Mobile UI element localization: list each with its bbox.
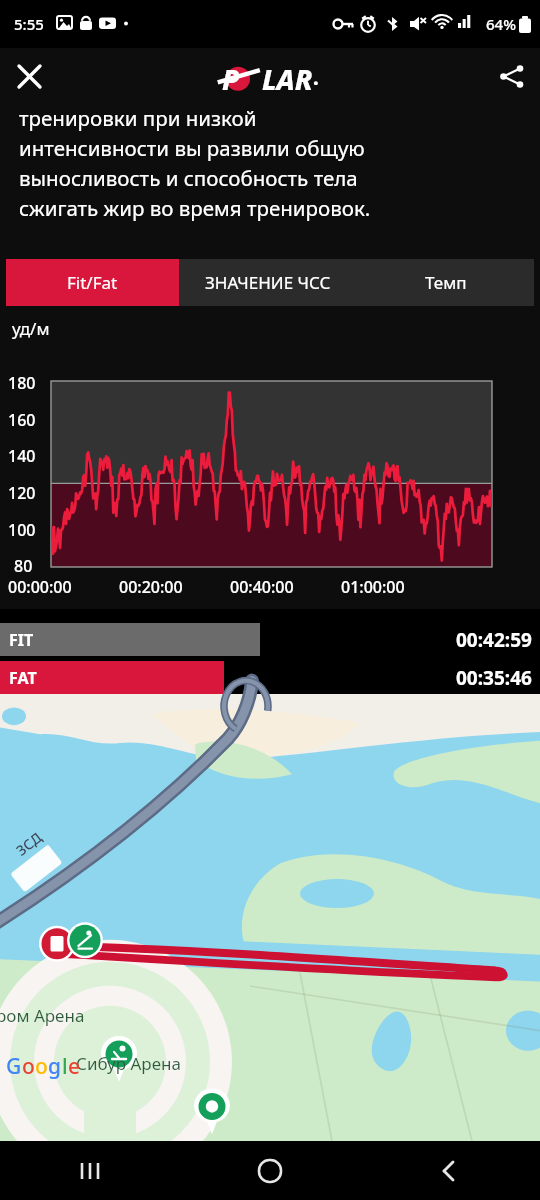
staticText: FAT bbox=[9, 667, 37, 689]
staticText: l bbox=[62, 1052, 68, 1081]
button[interactable]: Back bbox=[360, 1141, 540, 1200]
staticText: 00:35:46 bbox=[456, 665, 532, 691]
staticText: FIT bbox=[9, 629, 34, 651]
staticText: 140 bbox=[8, 445, 36, 467]
staticText: ЗСД bbox=[12, 827, 46, 860]
staticText: 160 bbox=[8, 409, 36, 431]
staticText: с ними же. Во время этой тренировки при … bbox=[19, 105, 371, 222]
staticText: уд/м bbox=[12, 317, 50, 340]
staticText: P bbox=[222, 60, 240, 94]
staticText: . bbox=[313, 64, 319, 91]
staticText: 64% bbox=[486, 14, 516, 34]
button[interactable]: FIT bbox=[0, 623, 540, 656]
button[interactable]: Close bbox=[0, 48, 58, 105]
staticText: 100 bbox=[8, 519, 36, 541]
staticText: 01:00:00 bbox=[341, 576, 405, 598]
staticText: o bbox=[22, 1052, 35, 1081]
staticText: 00:00:00 bbox=[8, 576, 72, 598]
staticText: 5:55 bbox=[14, 14, 44, 34]
staticText: Темп bbox=[425, 271, 467, 294]
button[interactable]: Темп bbox=[357, 259, 534, 306]
staticText: e bbox=[68, 1052, 81, 1081]
button[interactable]: Route map bbox=[0, 694, 540, 1141]
button[interactable]: ЗНАЧЕНИЕ ЧСС bbox=[179, 259, 357, 306]
button[interactable]: Recent apps bbox=[0, 1141, 180, 1200]
button[interactable]: FAT bbox=[0, 661, 540, 694]
staticText: G bbox=[6, 1052, 22, 1081]
staticText: Fit/Fat bbox=[67, 271, 118, 294]
staticText: 120 bbox=[8, 482, 36, 504]
staticText: o bbox=[35, 1052, 48, 1081]
staticText: Сибур Арена bbox=[76, 1052, 181, 1075]
staticText: ром Арена bbox=[0, 1004, 85, 1027]
staticText: 180 bbox=[8, 372, 36, 394]
button[interactable]: Share bbox=[482, 48, 540, 105]
staticText: 00:40:00 bbox=[230, 576, 294, 598]
button[interactable]: Home bbox=[180, 1141, 360, 1200]
staticText: 00:42:59 bbox=[456, 627, 532, 653]
button[interactable]: Fit/Fat bbox=[6, 259, 179, 306]
staticText: 00:20:00 bbox=[119, 576, 183, 598]
staticText: ЗНАЧЕНИЕ ЧСС bbox=[205, 271, 331, 294]
staticText: LAR bbox=[262, 60, 313, 94]
staticText: 80 bbox=[14, 555, 33, 577]
staticText: g bbox=[48, 1052, 62, 1081]
